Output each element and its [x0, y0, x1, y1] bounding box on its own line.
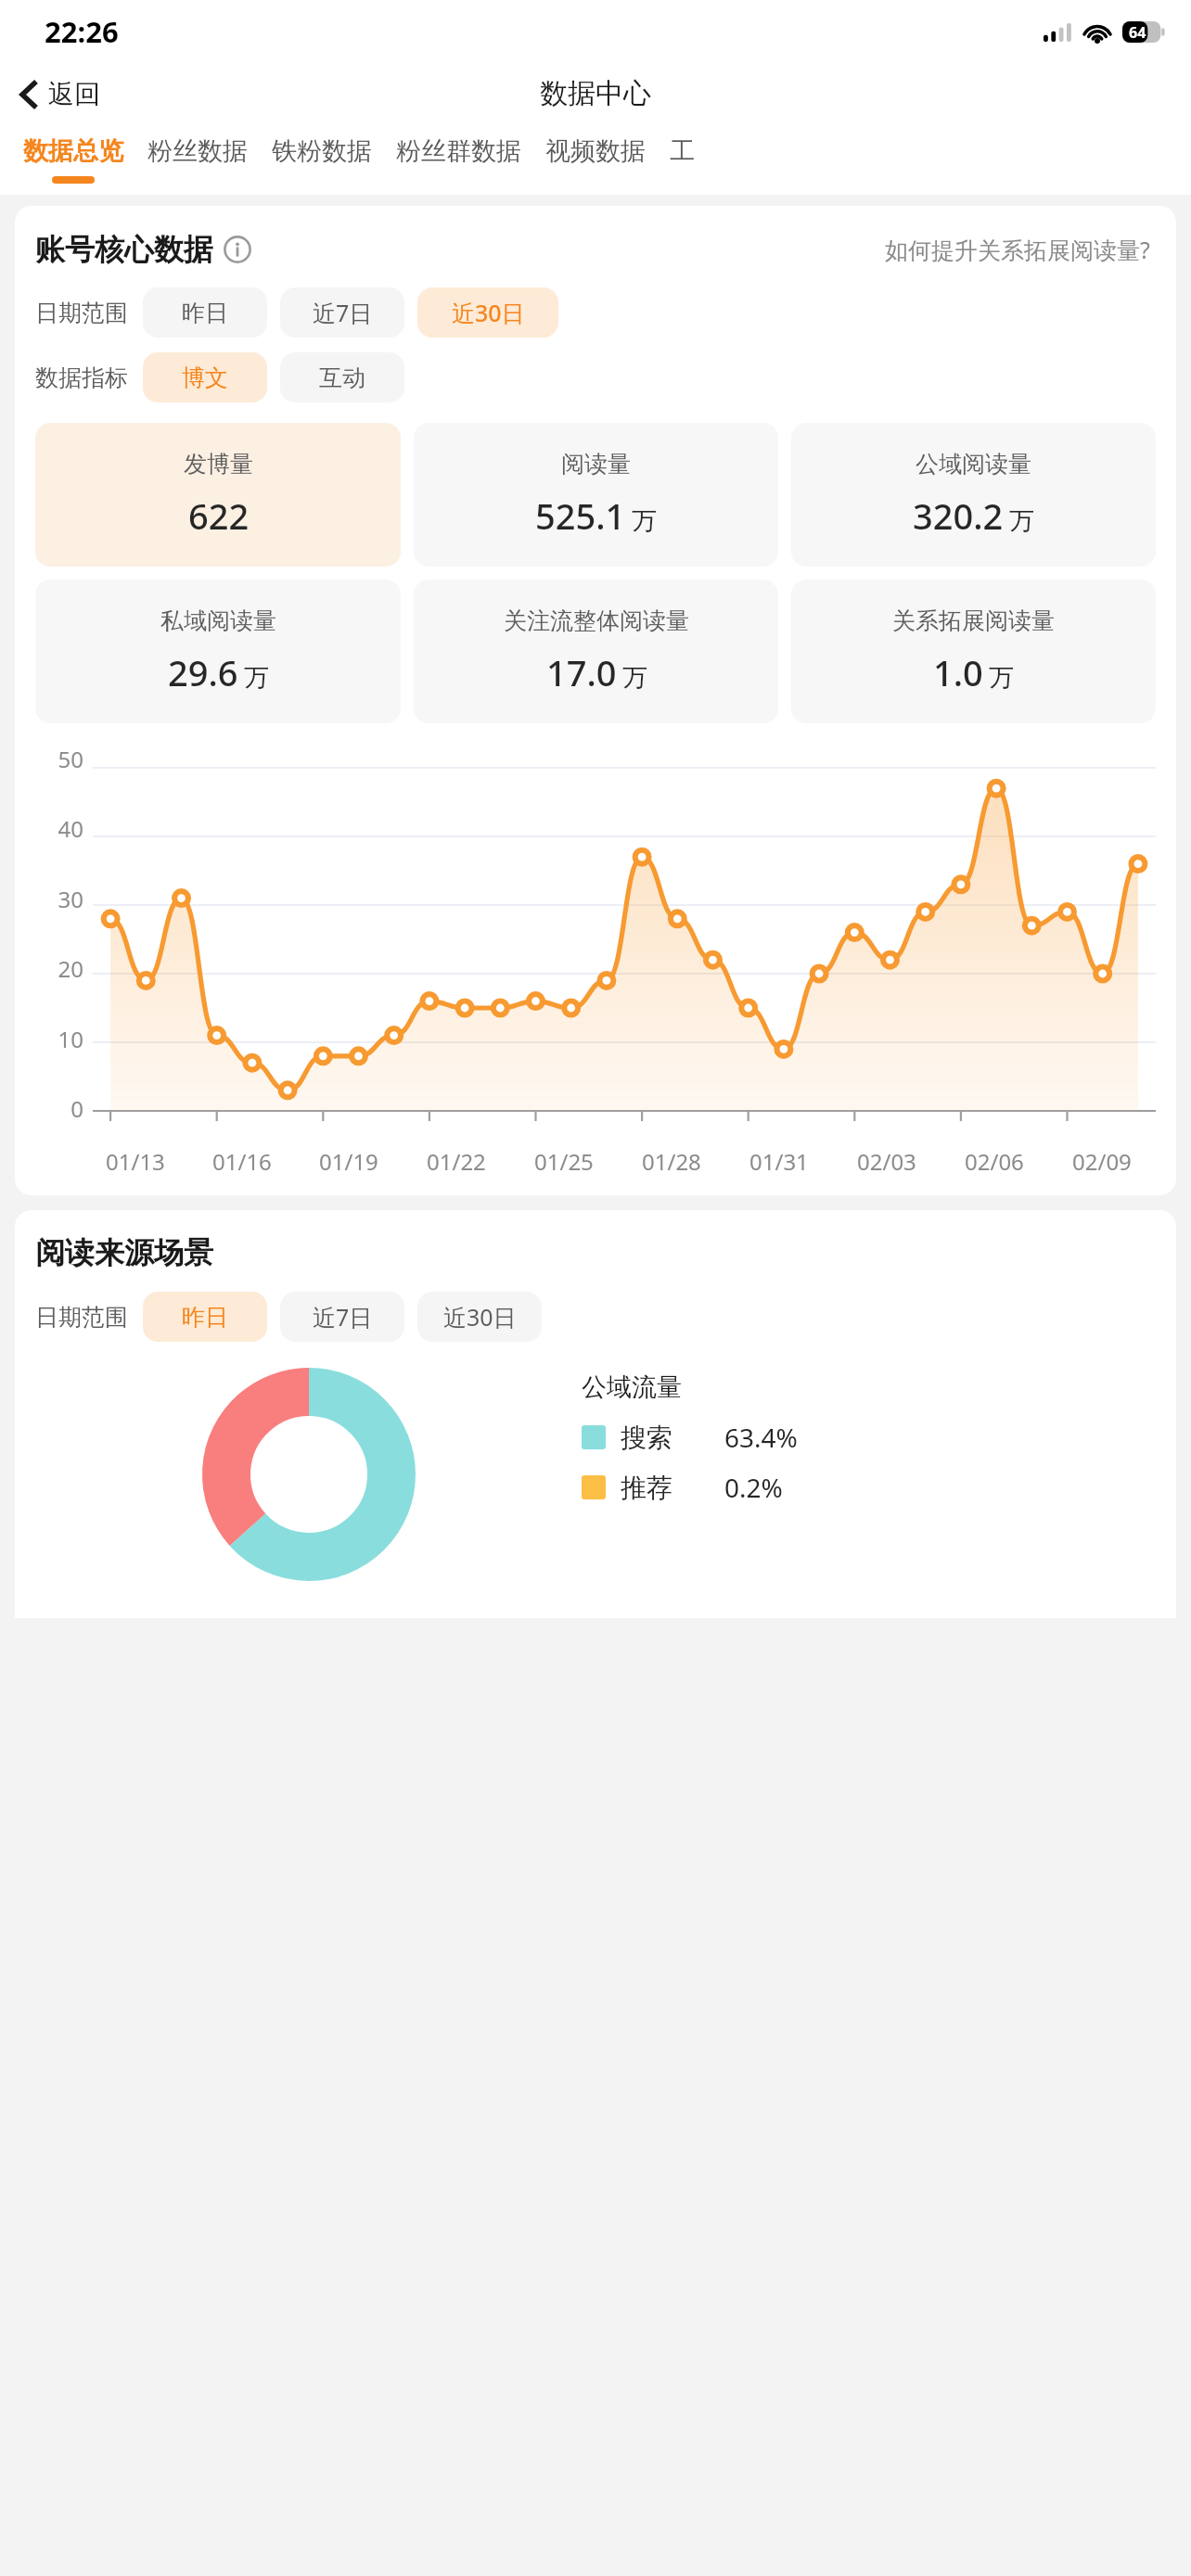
staticText: 推荐: [621, 1472, 672, 1504]
staticText: 返回: [48, 78, 100, 110]
staticText: 29.6: [168, 648, 238, 696]
staticText: 关系拓展阅读量: [892, 606, 1055, 635]
staticText: 20: [35, 953, 83, 984]
button[interactable]: 互动: [280, 352, 404, 402]
button[interactable]: 关注流整体阅读量: [414, 580, 778, 723]
staticText: 发博量: [184, 450, 253, 478]
button[interactable]: 公域阅读量: [791, 423, 1156, 567]
staticText: 昨日: [182, 1303, 228, 1332]
staticText: 日期范围: [35, 299, 128, 327]
button[interactable]: 粉丝群数据: [384, 130, 533, 195]
staticText: 万: [1009, 505, 1034, 537]
staticText: 0.2%: [724, 1470, 783, 1505]
staticText: 64: [1129, 22, 1146, 43]
staticText: 万: [244, 662, 269, 694]
staticText: 阅读来源场景: [35, 1234, 213, 1271]
staticText: 0: [35, 1093, 83, 1124]
button[interactable]: 如何提升关系拓展阅读量?: [879, 228, 1156, 271]
staticText: 01/16: [212, 1146, 272, 1177]
staticText: 17.0: [546, 648, 617, 696]
staticText: 622: [188, 491, 250, 540]
button[interactable]: 阅读量: [414, 423, 778, 567]
button[interactable]: 说明: [223, 235, 252, 264]
staticText: 万: [989, 662, 1014, 694]
staticText: 关注流整体阅读量: [504, 606, 689, 635]
staticText: 公域阅读量: [916, 450, 1031, 478]
staticText: 10: [35, 1024, 83, 1054]
staticText: 账号核心数据: [35, 231, 213, 268]
staticText: 日期范围: [35, 1303, 128, 1332]
staticText: 30: [35, 884, 83, 914]
staticText: 近30日: [452, 297, 525, 328]
button[interactable]: 铁粉数据: [260, 130, 384, 195]
button[interactable]: 工: [658, 130, 707, 195]
staticText: 搜索: [621, 1422, 672, 1454]
button[interactable]: 近7日: [280, 1292, 404, 1342]
staticText: 02/06: [965, 1146, 1024, 1177]
staticText: 近30日: [443, 1301, 517, 1333]
staticText: 近7日: [313, 297, 373, 328]
staticText: 01/25: [534, 1146, 594, 1177]
button[interactable]: 返回: [0, 70, 117, 118]
staticText: 近7日: [313, 1301, 373, 1333]
staticText: 昨日: [182, 299, 228, 327]
staticText: 01/19: [319, 1146, 378, 1177]
staticText: 数据指标: [35, 363, 128, 392]
button[interactable]: 博文: [143, 352, 267, 402]
staticText: 铁粉数据: [272, 135, 372, 167]
button[interactable]: 视频数据: [533, 130, 658, 195]
staticText: 粉丝群数据: [396, 135, 521, 167]
staticText: 02/09: [1072, 1146, 1132, 1177]
staticText: 320.2: [913, 491, 1004, 540]
button[interactable]: 关系拓展阅读量: [791, 580, 1156, 723]
staticText: 视频数据: [545, 135, 646, 167]
staticText: 50: [35, 744, 83, 774]
button[interactable]: 数据总览: [11, 130, 135, 195]
staticText: 01/22: [427, 1146, 486, 1177]
staticText: 博文: [182, 363, 228, 392]
button[interactable]: 近30日: [417, 287, 558, 338]
staticText: 如何提升关系拓展阅读量?: [885, 234, 1150, 265]
staticText: 私域阅读量: [160, 606, 276, 635]
button[interactable]: 近30日: [417, 1292, 542, 1342]
staticText: 63.4%: [724, 1420, 798, 1455]
button[interactable]: 私域阅读量: [35, 580, 401, 723]
staticText: 数据总览: [23, 135, 123, 167]
button[interactable]: 昨日: [143, 1292, 267, 1342]
staticText: 万: [622, 662, 647, 694]
staticText: 525.1: [535, 491, 626, 540]
staticText: 02/03: [857, 1146, 916, 1177]
button[interactable]: 发博量: [35, 423, 401, 567]
staticText: 互动: [319, 363, 365, 392]
staticText: 公域流量: [582, 1371, 682, 1403]
staticText: 01/31: [749, 1146, 809, 1177]
button[interactable]: 搜索: [582, 1420, 798, 1455]
staticText: 40: [35, 813, 83, 844]
staticText: 1.0: [933, 648, 983, 696]
button[interactable]: 近7日: [280, 287, 404, 338]
staticText: 阅读量: [561, 450, 631, 478]
staticText: 01/28: [642, 1146, 701, 1177]
staticText: 22:26: [45, 12, 119, 51]
button[interactable]: 粉丝数据: [135, 130, 260, 195]
staticText: 粉丝数据: [147, 135, 248, 167]
button[interactable]: 昨日: [143, 287, 267, 338]
staticText: 工: [670, 135, 695, 167]
button[interactable]: 推荐: [582, 1470, 783, 1505]
staticText: 数据中心: [540, 76, 651, 111]
staticText: 万: [632, 505, 657, 537]
staticText: 01/13: [106, 1146, 165, 1177]
